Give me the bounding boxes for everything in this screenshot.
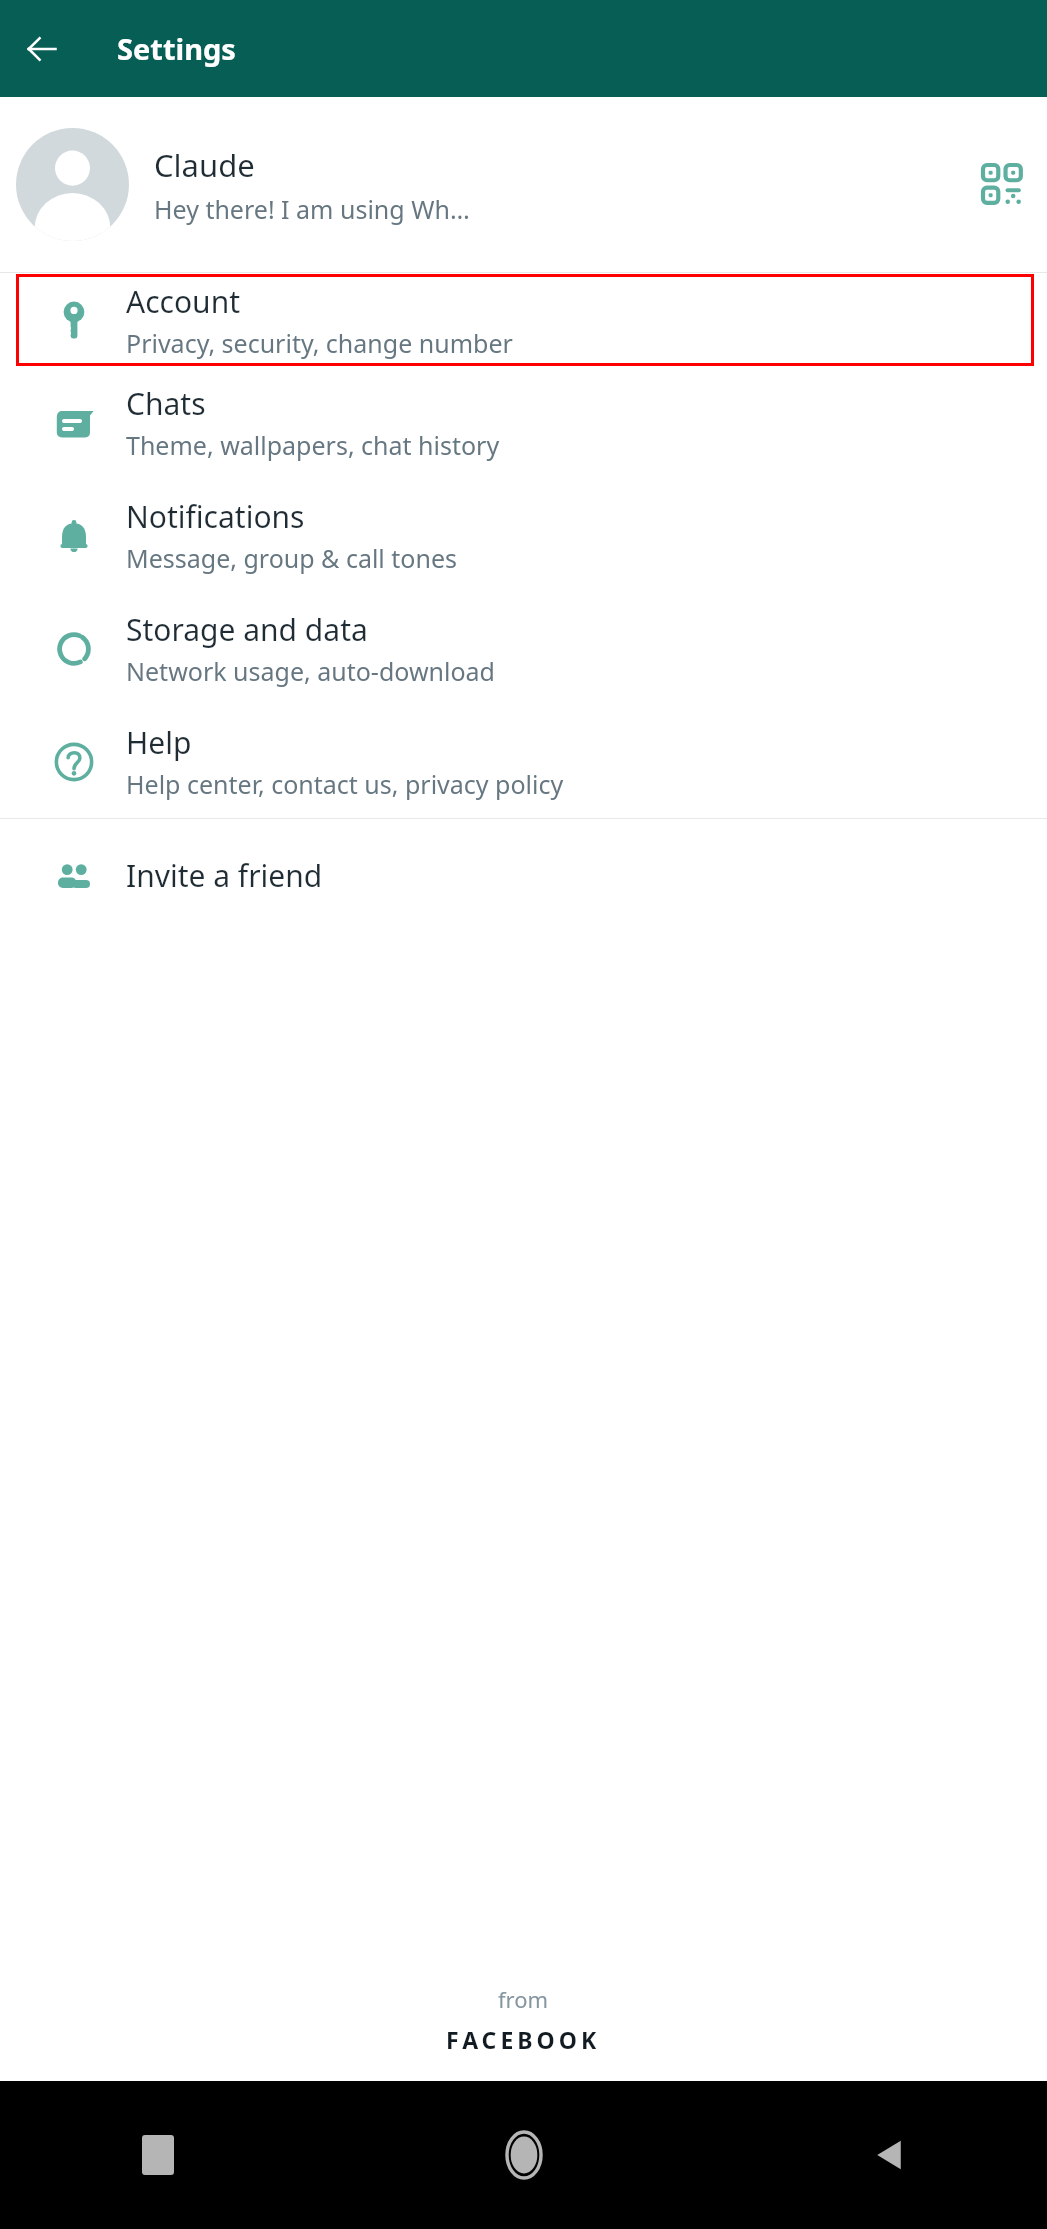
staticText: Claude — [154, 144, 255, 186]
button[interactable]: Claude — [0, 97, 1047, 272]
staticText: Chats — [126, 383, 206, 424]
button[interactable]: Chats — [0, 366, 1047, 479]
staticText: Privacy, security, change number — [126, 326, 513, 360]
staticText: Help center, contact us, privacy policy — [126, 767, 564, 801]
staticText: FACEBOOK — [446, 2024, 601, 2055]
staticText: Network usage, auto-download — [126, 654, 495, 688]
button[interactable]: Back — [851, 2117, 927, 2193]
button[interactable]: Home — [486, 2117, 562, 2193]
button[interactable]: Account — [16, 274, 1034, 366]
button[interactable]: Invite a friend — [0, 819, 1047, 932]
staticText: Account — [126, 281, 241, 322]
button[interactable]: QR code — [975, 157, 1031, 213]
staticText: from — [498, 1984, 549, 2014]
staticText: Theme, wallpapers, chat history — [126, 428, 500, 462]
staticText: Invite a friend — [126, 855, 323, 896]
button[interactable]: Storage and data — [0, 592, 1047, 705]
staticText: Storage and data — [126, 609, 368, 650]
button[interactable]: Help — [0, 705, 1047, 818]
button[interactable]: Back — [12, 19, 72, 79]
staticText: Hey there! I am using Wh… — [154, 192, 470, 226]
staticText: Settings — [117, 29, 236, 68]
staticText: Message, group & call tones — [126, 541, 457, 575]
staticText: Help — [126, 722, 192, 763]
staticText: Notifications — [126, 496, 305, 537]
button[interactable]: Recents — [120, 2117, 196, 2193]
button[interactable]: Notifications — [0, 479, 1047, 592]
